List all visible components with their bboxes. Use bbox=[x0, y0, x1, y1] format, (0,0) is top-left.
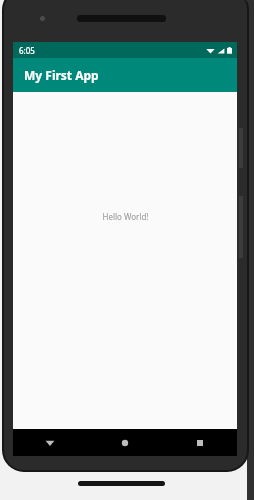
staticText: My First App bbox=[24, 67, 99, 83]
button[interactable]: Home bbox=[87, 429, 162, 456]
button[interactable]: My First App bbox=[13, 58, 237, 92]
button[interactable]: Back bbox=[13, 429, 87, 456]
staticText: Hello World! bbox=[102, 211, 149, 222]
button[interactable]: Recent apps bbox=[162, 429, 237, 456]
staticText: 6:05 bbox=[19, 45, 35, 56]
